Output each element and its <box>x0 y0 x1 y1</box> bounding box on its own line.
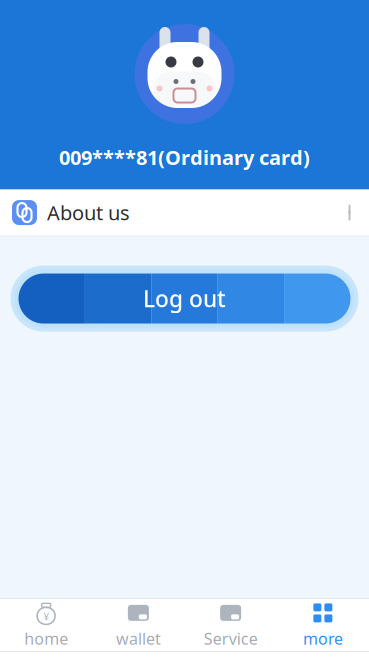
button[interactable]: ¥ <box>0 595 92 655</box>
button[interactable]: more <box>277 595 369 655</box>
staticText: Service <box>204 628 258 649</box>
button[interactable]: wallet <box>92 595 184 655</box>
button[interactable]: Log out <box>18 274 350 324</box>
staticText: ¥ <box>43 609 49 623</box>
staticText: Log out <box>143 283 226 314</box>
staticText: wallet <box>116 628 161 649</box>
button[interactable]: Service <box>184 595 277 655</box>
staticText: more <box>303 628 343 649</box>
staticText: About us <box>47 199 130 226</box>
staticText: home <box>24 628 68 649</box>
staticText: 009****81(Ordinary card) <box>59 144 310 171</box>
button[interactable]: About us <box>0 190 369 236</box>
